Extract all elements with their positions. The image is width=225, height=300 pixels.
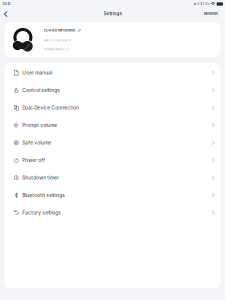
- button[interactable]: Bluetooth settings: [4, 186, 220, 204]
- staticText: Mac:CC:A6:8D:F9:6C:B1: [44, 39, 72, 42]
- staticText: Reviews: [204, 11, 218, 16]
- button[interactable]: Power off: [4, 151, 220, 169]
- staticText: EDIFIER WH950NB: [44, 28, 75, 32]
- staticText: Shutdown timer: [22, 175, 59, 181]
- staticText: Power off: [22, 157, 45, 163]
- staticText: Safe volume: [22, 140, 51, 146]
- button[interactable]: Control settings: [4, 81, 220, 99]
- staticText: Dual-Device Connection: [22, 105, 79, 111]
- staticText: Bluetooth settings: [22, 192, 65, 198]
- button[interactable]: Reviews: [199, 8, 225, 19]
- button[interactable]: User manual: [4, 64, 220, 81]
- button[interactable]: Factory settings: [4, 204, 220, 221]
- staticText: Control settings: [22, 87, 60, 93]
- staticText: Settings: [103, 11, 121, 16]
- button[interactable]: Safe volume: [4, 134, 220, 151]
- button[interactable]: Rename device: [78, 28, 81, 32]
- staticText: User manual: [22, 70, 52, 76]
- button[interactable]: Back: [0, 8, 11, 19]
- staticText: 0.87 K/s: [198, 2, 210, 6]
- button[interactable]: Shutdown timer: [4, 169, 220, 186]
- button[interactable]: Prompt volume: [4, 116, 220, 134]
- staticText: Prompt volume: [22, 122, 57, 128]
- staticText: Factory settings: [22, 210, 61, 216]
- staticText: Firmware version:1.2.0: [44, 48, 69, 51]
- button[interactable]: Dual-Device Connection: [4, 99, 220, 116]
- staticText: 20:13: [3, 2, 11, 6]
